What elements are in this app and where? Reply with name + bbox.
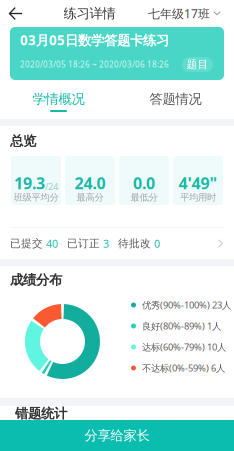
staticText: 待批改 [109,237,151,250]
staticText: 平均用时 [180,192,216,203]
staticText: /24 [45,180,58,193]
staticText: 练习详情 [63,5,115,22]
staticText: 40 [43,236,58,251]
staticText: 良好(80%-89%) 1人 [142,320,221,332]
staticText: 班级平均分 [13,192,58,203]
staticText: 最低分 [130,192,157,203]
staticText: 达标(60%-79%) 10人 [142,341,226,353]
staticText: 24.0 [74,172,105,194]
staticText: 2020/03/05 18:26 ~ 2020/03/06 18:26 [20,59,169,70]
staticText: 3 [100,236,109,251]
button[interactable]: 已提交 [0,228,234,259]
staticText: 成绩分布 [10,272,62,288]
staticText: 优秀(90%-100%) 23人 [142,299,231,311]
staticText: 0 [151,236,160,251]
staticText: 已提交 [10,237,43,250]
button[interactable]: 学情概况 [0,80,117,119]
staticText: 答题情况 [149,91,201,107]
staticText: 分享给家长 [84,427,149,444]
staticText: 最高分 [76,192,103,203]
staticText: 03月05日数学答题卡练习 [20,31,169,49]
button[interactable]: Back [0,0,31,27]
staticText: 题目 [186,58,208,71]
button[interactable]: 答题情况 [117,80,234,119]
staticText: 总览 [10,133,36,149]
staticText: 19.3 [14,172,45,194]
staticText: 4'49" [178,172,217,194]
button[interactable]: 七年级17班 [148,0,234,27]
staticText: 0.0 [133,172,155,194]
button[interactable]: 题目 [182,57,213,72]
staticText: 错题统计 [15,405,67,422]
button[interactable]: 分享给家长 [0,420,234,451]
staticText: 已订正 [58,237,100,250]
staticText: 不达标(0%-59%) 6人 [142,362,225,374]
staticText: 学情概况 [32,91,84,107]
staticText: 七年级17班 [148,5,210,21]
